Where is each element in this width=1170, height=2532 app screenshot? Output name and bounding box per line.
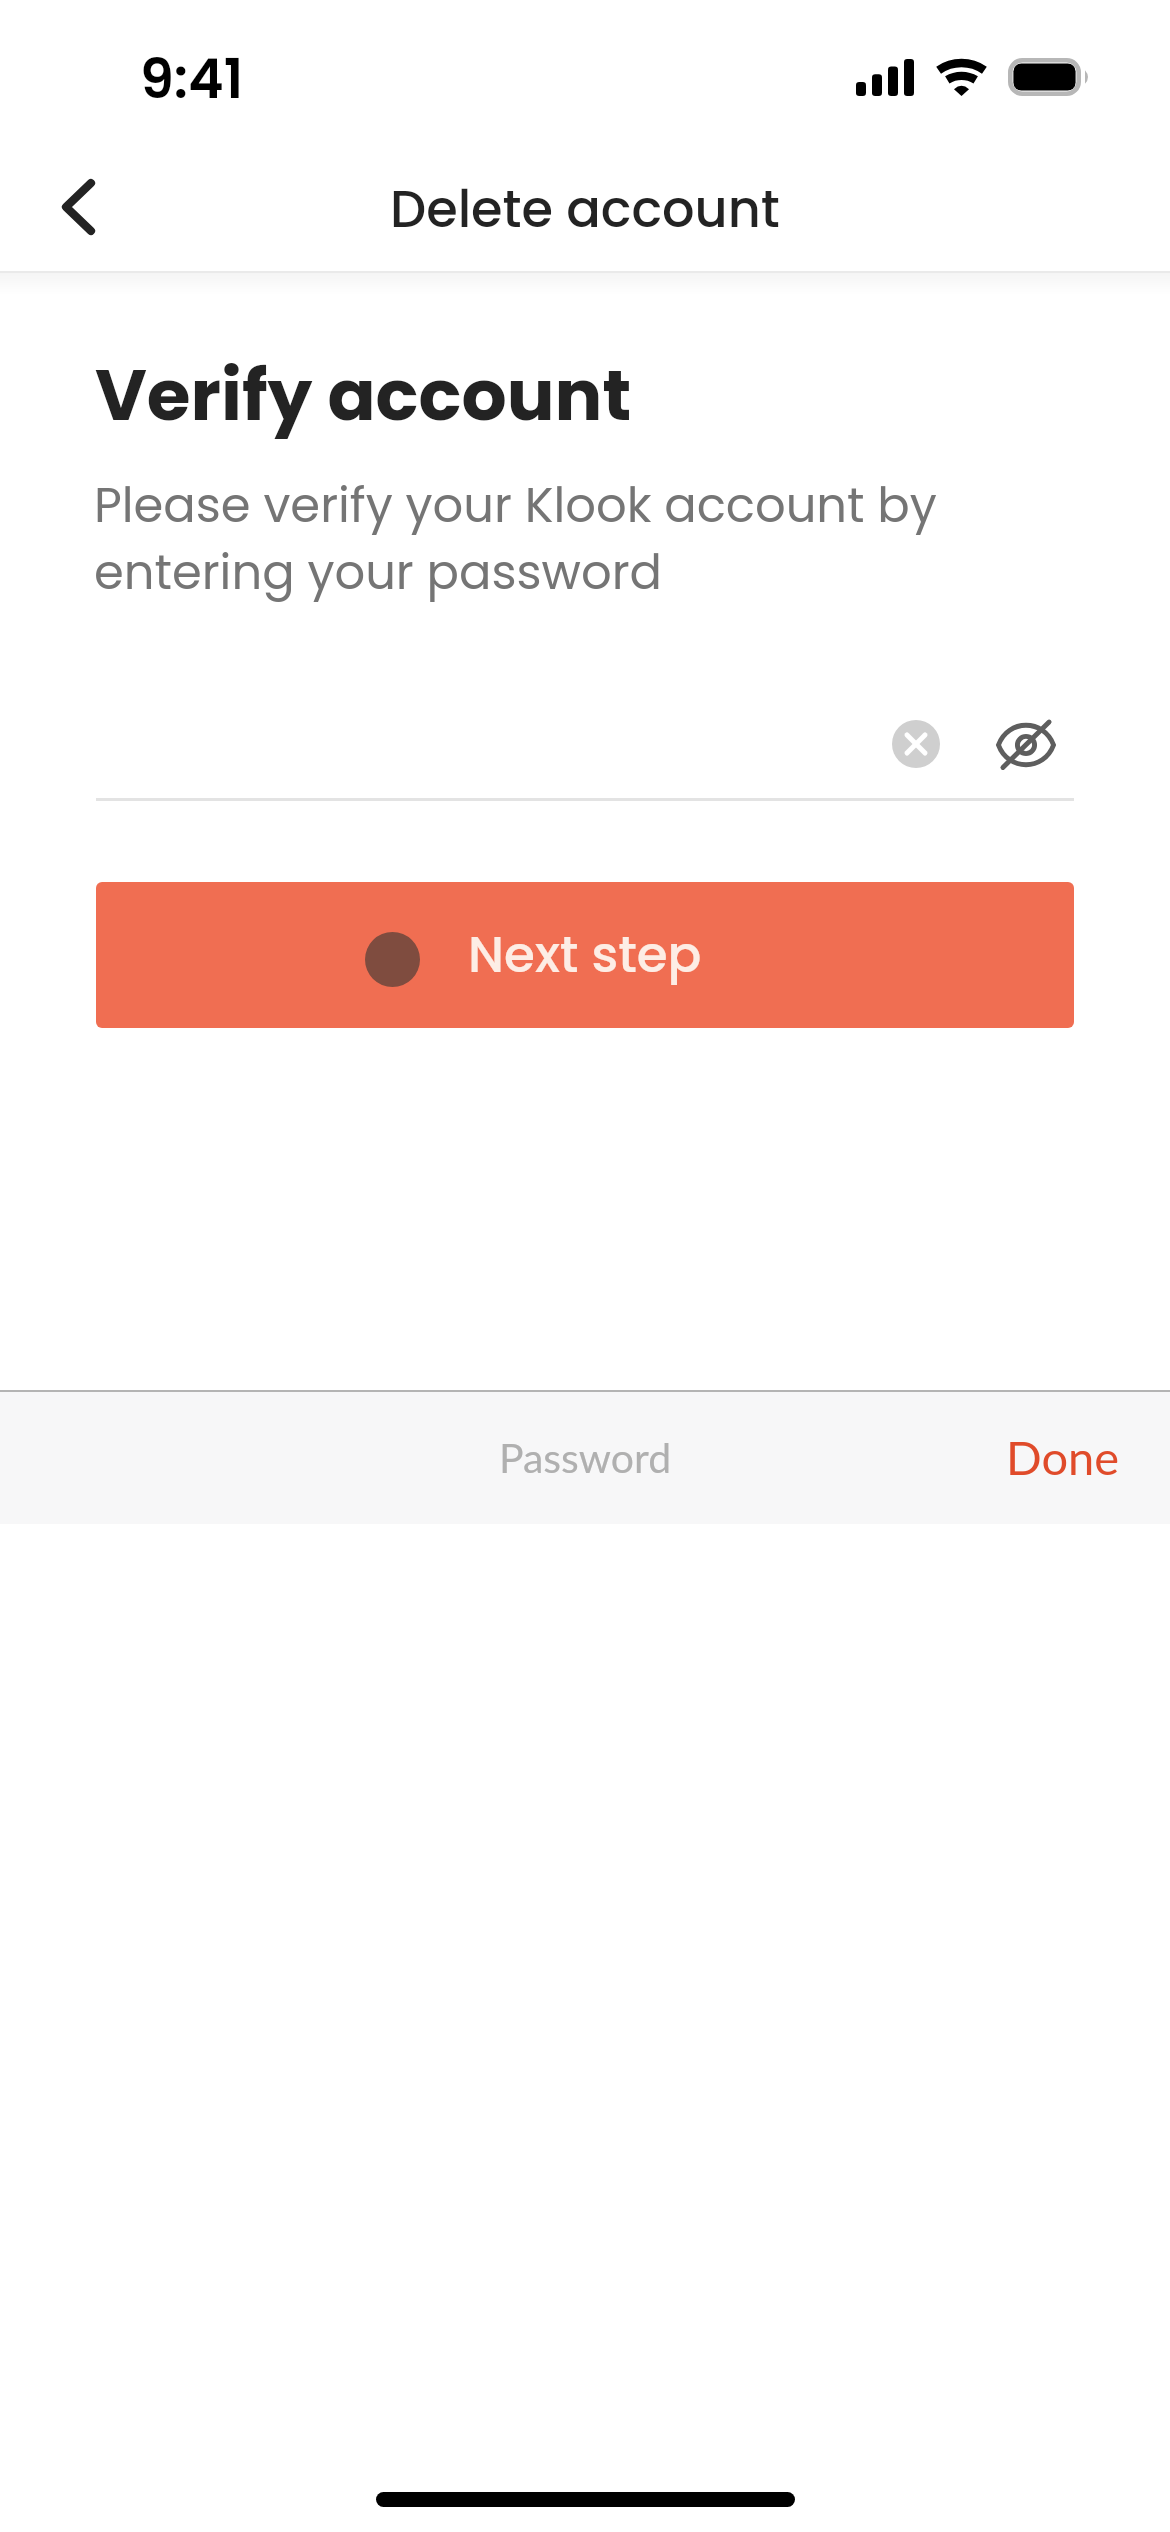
staticText: Delete account: [390, 173, 780, 244]
staticText: Done: [1006, 1429, 1120, 1485]
staticText: Next step: [468, 920, 702, 990]
staticText: Verify account: [95, 345, 632, 444]
button[interactable]: Show password: [990, 709, 1062, 781]
staticText: Please verify your Klook account by ente…: [94, 473, 937, 607]
button[interactable]: Clear text: [880, 708, 952, 780]
button[interactable]: Password field: [96, 690, 866, 800]
staticText: Password: [499, 1433, 672, 1482]
button[interactable]: Done: [984, 1409, 1142, 1505]
button[interactable]: Back: [30, 158, 126, 256]
staticText: 9:41: [140, 41, 244, 117]
button[interactable]: Next step: [96, 882, 1074, 1028]
